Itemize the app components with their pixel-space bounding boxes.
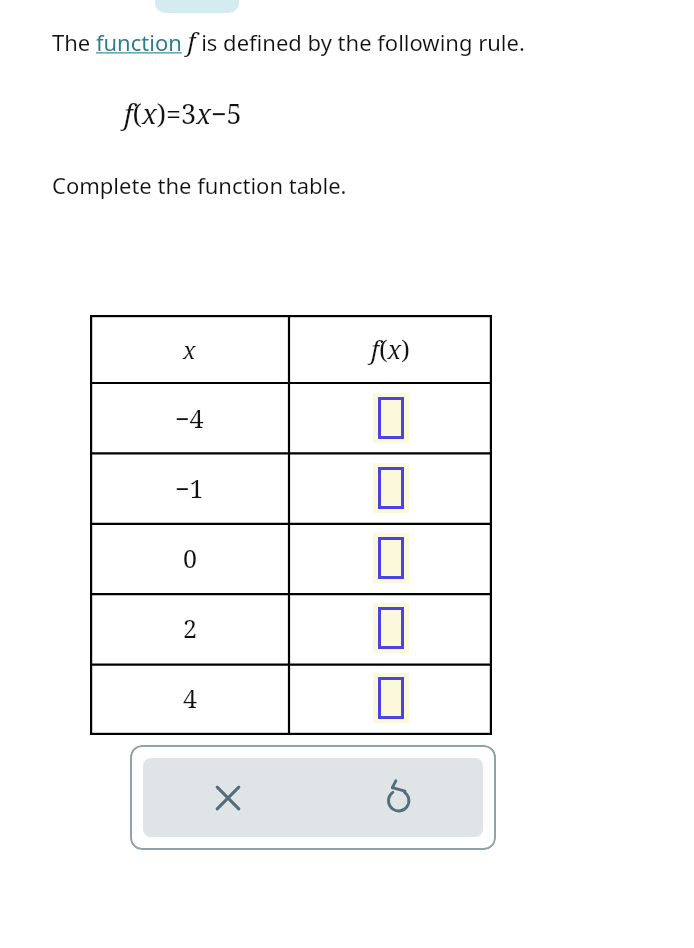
- button[interactable]: Answer input: [373, 533, 409, 583]
- button[interactable]: Undo: [313, 758, 483, 837]
- staticText: Complete the function table.: [52, 170, 347, 200]
- button[interactable]: Answer input: [373, 673, 409, 723]
- staticText: 2: [183, 611, 197, 645]
- button[interactable]: Clear: [143, 758, 313, 837]
- staticText: The function f is defined by the followi…: [52, 24, 525, 58]
- button[interactable]: Answer input: [373, 603, 409, 653]
- staticText: f(x)=3x−5: [124, 95, 242, 132]
- staticText: x: [183, 334, 196, 365]
- button[interactable]: Answer input: [373, 393, 409, 443]
- staticText: −4: [175, 401, 204, 435]
- staticText: 0: [183, 541, 197, 575]
- staticText: 4: [183, 681, 197, 715]
- staticText: f(x): [371, 332, 410, 366]
- button[interactable]: Answer input: [373, 463, 409, 513]
- staticText: −1: [175, 471, 204, 505]
